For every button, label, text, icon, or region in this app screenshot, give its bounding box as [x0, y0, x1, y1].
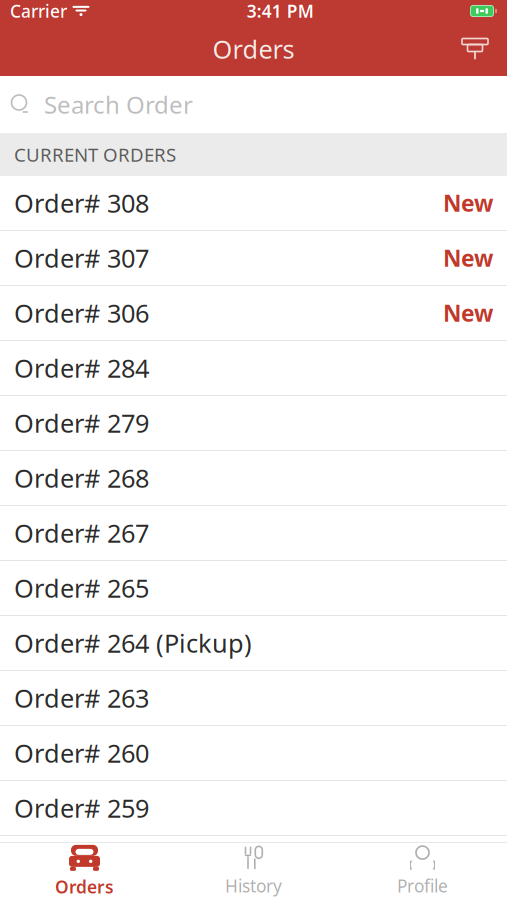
button[interactable]: Order# 267 — [0, 506, 507, 561]
staticText: Search Order — [44, 89, 193, 120]
staticText: Order# 259 — [14, 791, 149, 825]
staticText: History — [225, 874, 282, 897]
button[interactable]: Order# 306 — [0, 286, 507, 341]
button[interactable]: Order# 284 — [0, 341, 507, 396]
staticText: 3:41 PM — [247, 0, 314, 22]
staticText: New — [443, 188, 493, 218]
staticText: Profile — [397, 874, 448, 897]
staticText: Order# 263 — [14, 681, 149, 715]
button[interactable]: Order# 279 — [0, 396, 507, 451]
button[interactable]: Order# 308 — [0, 176, 507, 231]
staticText: Order# 284 — [14, 351, 149, 385]
button[interactable]: Order# 263 — [0, 671, 507, 726]
staticText: Carrier — [10, 0, 67, 22]
button[interactable]: Profile — [338, 843, 507, 900]
button[interactable]: History — [169, 843, 338, 900]
staticText: Order# 279 — [14, 406, 149, 440]
button[interactable]: Order# 260 — [0, 726, 507, 781]
button[interactable]: Order# 264 (Pickup) — [0, 616, 507, 671]
button[interactable]: Orders — [0, 843, 169, 900]
staticText: CURRENT ORDERS — [14, 142, 176, 167]
button[interactable]: Filter orders — [449, 24, 501, 74]
staticText: Order# 268 — [14, 461, 149, 495]
staticText: Order# 267 — [14, 516, 149, 550]
staticText: Order# 307 — [14, 241, 149, 275]
staticText: New — [443, 298, 493, 328]
staticText: New — [443, 243, 493, 273]
staticText: Order# 308 — [14, 186, 149, 220]
button[interactable]: Order# 307 — [0, 231, 507, 286]
staticText: Order# 264 (Pickup) — [14, 626, 252, 660]
staticText: Order# 306 — [14, 296, 149, 330]
button[interactable]: Order# 268 — [0, 451, 507, 506]
staticText: Order# 265 — [14, 571, 149, 605]
button[interactable]: Order# 259 — [0, 781, 507, 836]
staticText: Order# 260 — [14, 736, 149, 770]
button[interactable]: Order# 265 — [0, 561, 507, 616]
staticText: Orders — [212, 32, 294, 66]
staticText: Orders — [55, 875, 114, 898]
